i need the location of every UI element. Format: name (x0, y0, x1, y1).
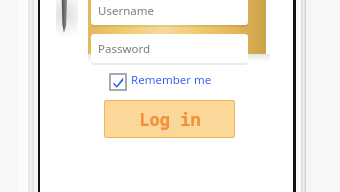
button[interactable]: Log in (104, 100, 235, 138)
button[interactable]: Username (91, 0, 248, 25)
staticText: Remember me (131, 72, 212, 88)
staticText: Password (98, 41, 151, 57)
button[interactable]: Password (91, 34, 248, 63)
staticText: Username (98, 3, 154, 19)
staticText: Log in (139, 108, 201, 131)
button[interactable]: Remember me (109, 68, 223, 92)
